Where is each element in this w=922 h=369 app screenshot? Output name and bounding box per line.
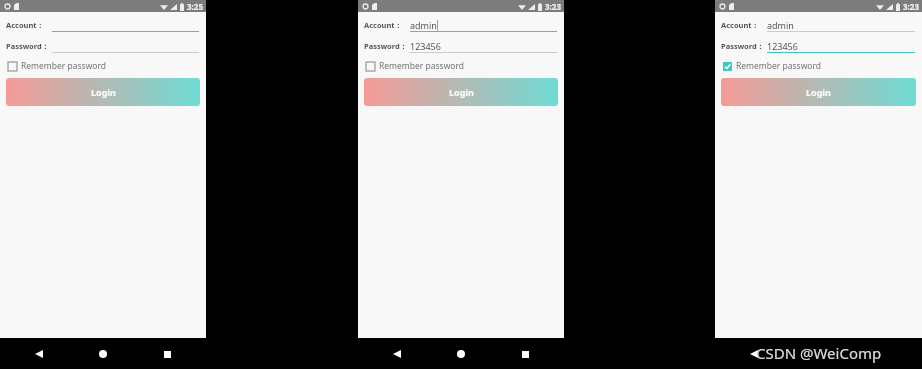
button[interactable] xyxy=(52,39,199,53)
staticText: CSDN @WeiComp xyxy=(756,343,882,363)
button[interactable]: Recents xyxy=(514,343,536,365)
button[interactable]: Home xyxy=(92,343,114,365)
button[interactable]: Login xyxy=(364,78,558,106)
button[interactable]: Login xyxy=(721,78,916,106)
staticText: admin xyxy=(410,19,437,31)
staticText: 3:23 xyxy=(903,1,919,12)
button[interactable]: Home xyxy=(450,343,472,365)
button[interactable] xyxy=(52,18,199,32)
button[interactable]: admin xyxy=(410,18,557,32)
button[interactable]: 123456 xyxy=(410,39,557,53)
staticText: Remember password xyxy=(379,60,465,72)
button[interactable]: admin xyxy=(767,18,915,32)
staticText: Account： xyxy=(364,20,403,30)
button[interactable]: Remember password xyxy=(720,57,825,75)
staticText: Login xyxy=(449,86,474,98)
staticText: admin xyxy=(767,19,794,31)
staticText: Password： xyxy=(721,41,765,51)
button[interactable]: Back xyxy=(386,343,408,365)
button[interactable]: Remember password xyxy=(5,57,110,75)
staticText: 123456 xyxy=(410,40,441,52)
staticText: 3:25 xyxy=(187,1,203,12)
button[interactable]: Remember password xyxy=(363,57,468,75)
button[interactable]: Home xyxy=(808,343,830,365)
button[interactable]: Recents xyxy=(156,343,178,365)
button[interactable]: Recents xyxy=(872,343,894,365)
staticText: Password： xyxy=(6,41,50,51)
staticText: Remember password xyxy=(21,60,107,72)
staticText: 3:23 xyxy=(545,1,561,12)
button[interactable]: Login xyxy=(6,78,200,106)
staticText: Password： xyxy=(364,41,408,51)
button[interactable]: 123456 xyxy=(767,39,915,53)
staticText: Login xyxy=(806,86,831,98)
staticText: Account： xyxy=(721,20,760,30)
staticText: Remember password xyxy=(736,60,822,72)
staticText: Account： xyxy=(6,20,45,30)
button[interactable]: Back xyxy=(743,343,765,365)
button[interactable]: Back xyxy=(28,343,50,365)
staticText: 123456 xyxy=(767,40,798,52)
staticText: Login xyxy=(91,86,116,98)
